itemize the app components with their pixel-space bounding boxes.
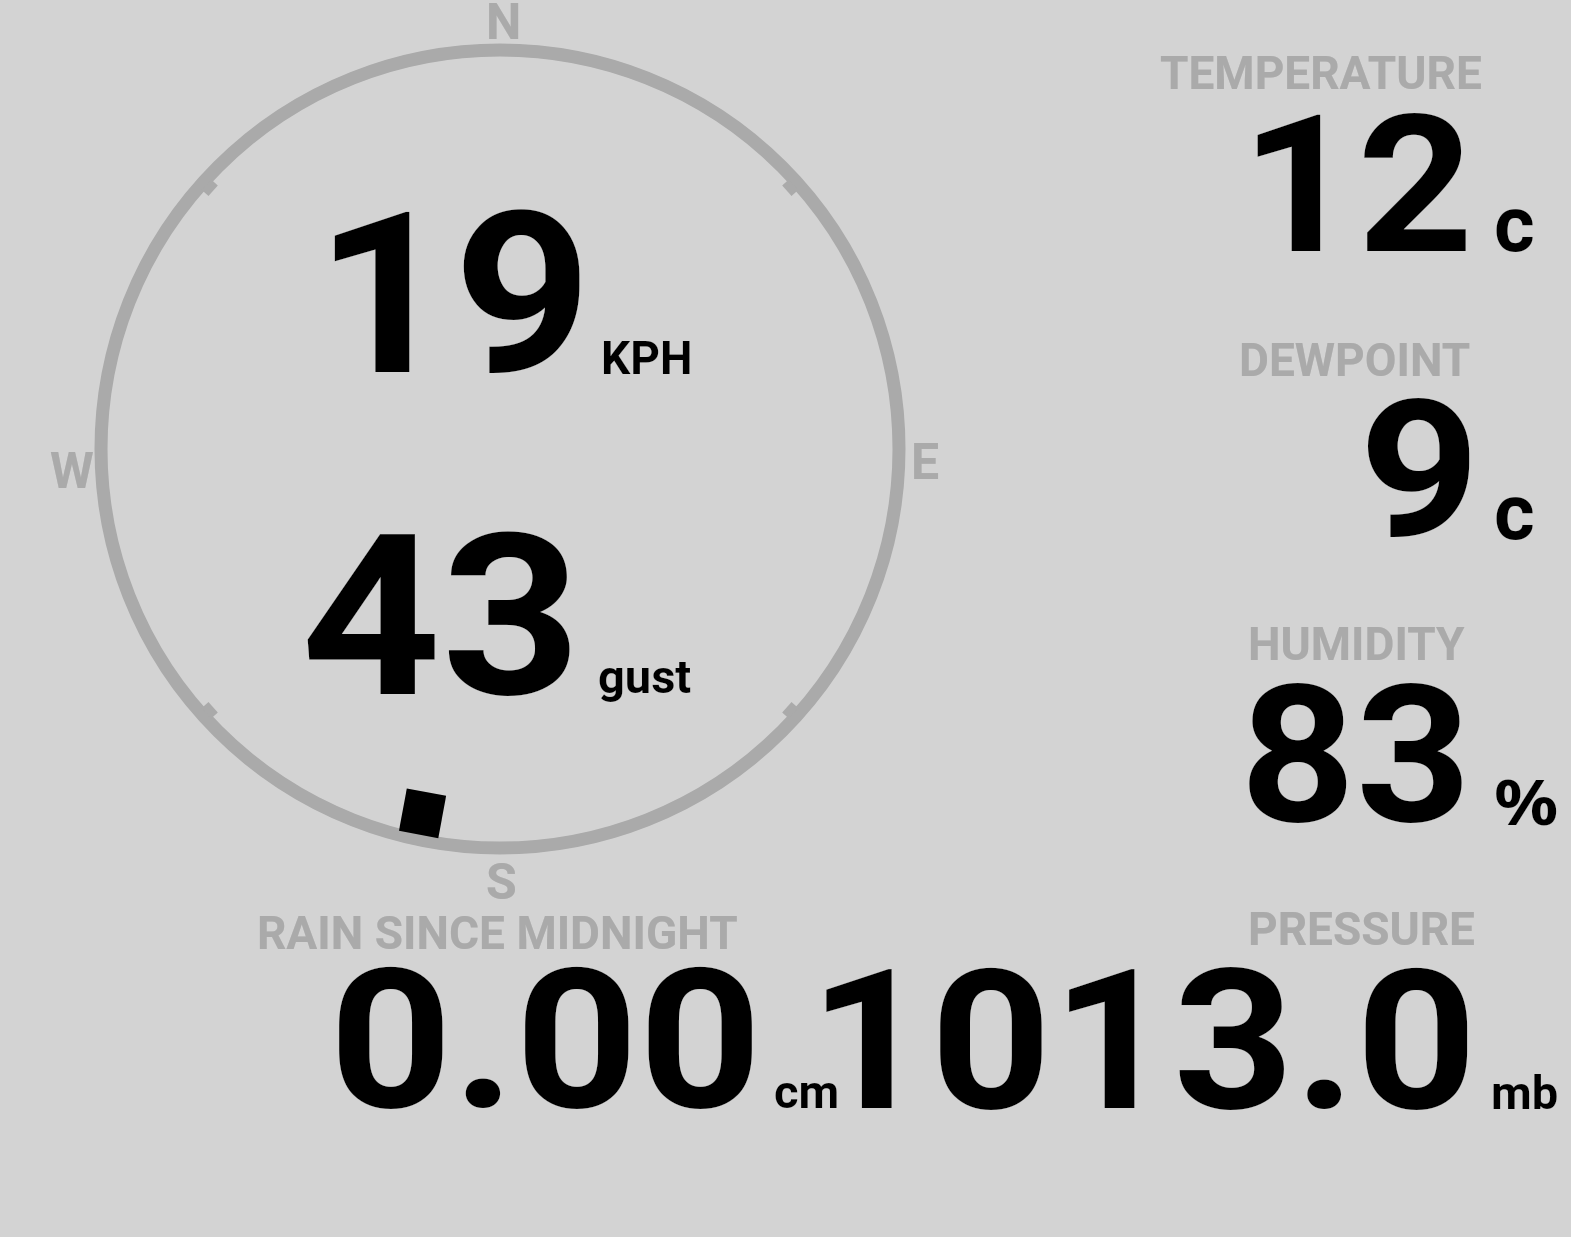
staticText: 83 <box>1240 643 1472 868</box>
staticText: 1013.0 <box>809 928 1477 1155</box>
staticText: 0.00 <box>329 927 763 1154</box>
button[interactable]: Humidity 83 percent <box>1130 605 1571 855</box>
staticText: c <box>1494 179 1535 270</box>
staticText: cm <box>774 1064 840 1119</box>
staticText: S <box>486 853 517 912</box>
button[interactable]: Rain since midnight 0.00 cm <box>240 895 860 1125</box>
staticText: KPH <box>601 331 693 385</box>
staticText: HUMIDITY <box>1248 617 1465 671</box>
staticText: PRESSURE <box>1248 902 1475 956</box>
staticText: E <box>911 433 940 492</box>
button[interactable]: Wind 19 KPH gusting 43, direction south … <box>40 0 1000 900</box>
staticText: TEMPERATURE <box>1160 46 1482 100</box>
staticText: 43 <box>301 485 582 749</box>
staticText: 19 <box>315 163 593 427</box>
button[interactable]: Dewpoint 9 degrees Celsius <box>1130 320 1571 590</box>
button[interactable]: Temperature 12 degrees Celsius <box>1130 30 1571 300</box>
staticText: c <box>1494 467 1535 558</box>
staticText: W <box>50 442 94 501</box>
staticText: DEWPOINT <box>1239 333 1471 387</box>
button[interactable]: Pressure 1013.0 mb <box>880 890 1571 1125</box>
staticText: N <box>486 0 522 52</box>
staticText: 9 <box>1359 358 1481 583</box>
staticText: % <box>1494 759 1558 843</box>
staticText: gust <box>598 649 692 704</box>
staticText: RAIN SINCE MIDNIGHT <box>257 906 738 960</box>
staticText: mb <box>1491 1065 1559 1120</box>
staticText: 12 <box>1241 73 1474 298</box>
